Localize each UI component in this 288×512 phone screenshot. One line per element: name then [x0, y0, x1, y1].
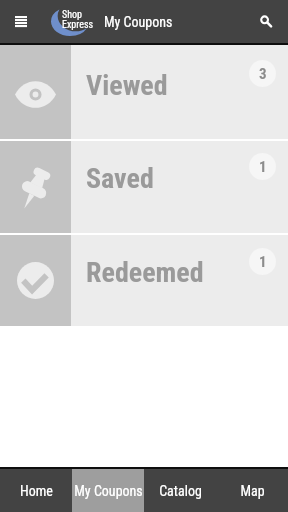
staticText: My Coupons — [74, 483, 143, 499]
button[interactable]: My Coupons — [72, 469, 144, 512]
button[interactable]: Saved — [0, 141, 288, 233]
staticText: Express — [62, 19, 94, 31]
staticText: 3 — [259, 65, 267, 83]
staticText: 1 — [259, 253, 267, 271]
button[interactable]: Redeemed — [0, 235, 288, 326]
staticText: Saved — [86, 162, 154, 195]
staticText: Catalog — [159, 483, 202, 499]
button[interactable]: Map — [216, 469, 288, 512]
staticText: 1 — [259, 158, 267, 176]
staticText: Redeemed — [86, 256, 204, 289]
button[interactable]: Open navigation menu — [0, 0, 36, 43]
staticText: My Coupons — [104, 14, 173, 30]
button[interactable]: Viewed — [0, 45, 288, 139]
staticText: Shop — [62, 9, 82, 21]
staticText: Viewed — [86, 69, 168, 102]
button[interactable]: Catalog — [144, 469, 216, 512]
staticText: Map — [240, 483, 265, 499]
button[interactable]: Home — [0, 469, 72, 512]
button[interactable]: Search — [244, 0, 288, 43]
staticText: Home — [20, 483, 53, 499]
